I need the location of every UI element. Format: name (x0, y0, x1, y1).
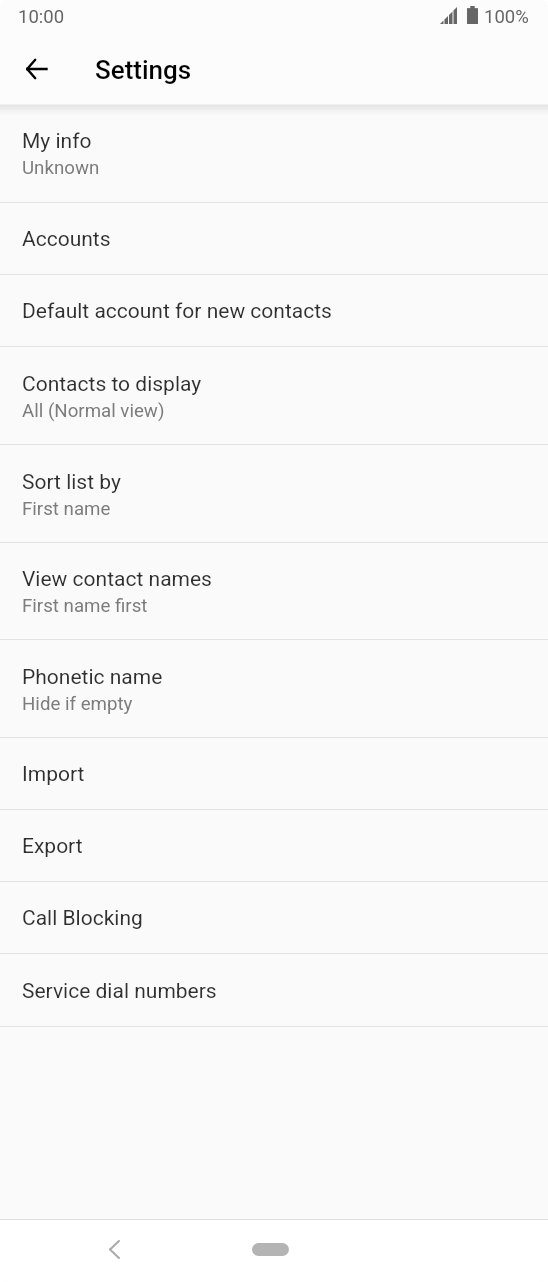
button[interactable]: Import (0, 738, 548, 809)
button[interactable]: Service dial numbers (0, 954, 548, 1026)
staticText: Phonetic name (22, 665, 163, 690)
staticText: Hide if empty (22, 693, 133, 715)
button[interactable]: Call Blocking (0, 882, 548, 953)
staticText: Settings (95, 55, 192, 85)
button[interactable]: View contact names (0, 543, 548, 639)
staticText: Unknown (22, 157, 100, 179)
staticText: Contacts to display (22, 372, 202, 397)
button[interactable]: Phonetic name (0, 640, 548, 737)
button[interactable]: Accounts (0, 203, 548, 274)
staticText: Service dial numbers (22, 979, 217, 1004)
staticText: 100% (484, 6, 529, 28)
button[interactable]: Contacts to display (0, 347, 548, 444)
button[interactable]: My info (0, 104, 548, 202)
staticText: View contact names (22, 567, 212, 592)
button[interactable]: Export (0, 810, 548, 881)
staticText: All (Normal view) (22, 400, 165, 422)
staticText: First name (22, 498, 111, 520)
button[interactable]: Default account for new contacts (0, 275, 548, 346)
staticText: Call Blocking (22, 906, 143, 931)
staticText: Sort list by (22, 470, 121, 495)
staticText: My info (22, 129, 92, 154)
staticText: Export (22, 834, 83, 859)
staticText: Import (22, 762, 85, 787)
button[interactable]: Sort list by (0, 445, 548, 542)
staticText: Accounts (22, 227, 111, 252)
staticText: 10:00 (18, 6, 65, 28)
button[interactable]: Home (230, 1225, 310, 1274)
staticText: First name first (22, 595, 148, 617)
button[interactable]: Back (90, 1225, 138, 1273)
button[interactable]: Navigate up (12, 45, 60, 93)
staticText: Default account for new contacts (22, 299, 332, 324)
